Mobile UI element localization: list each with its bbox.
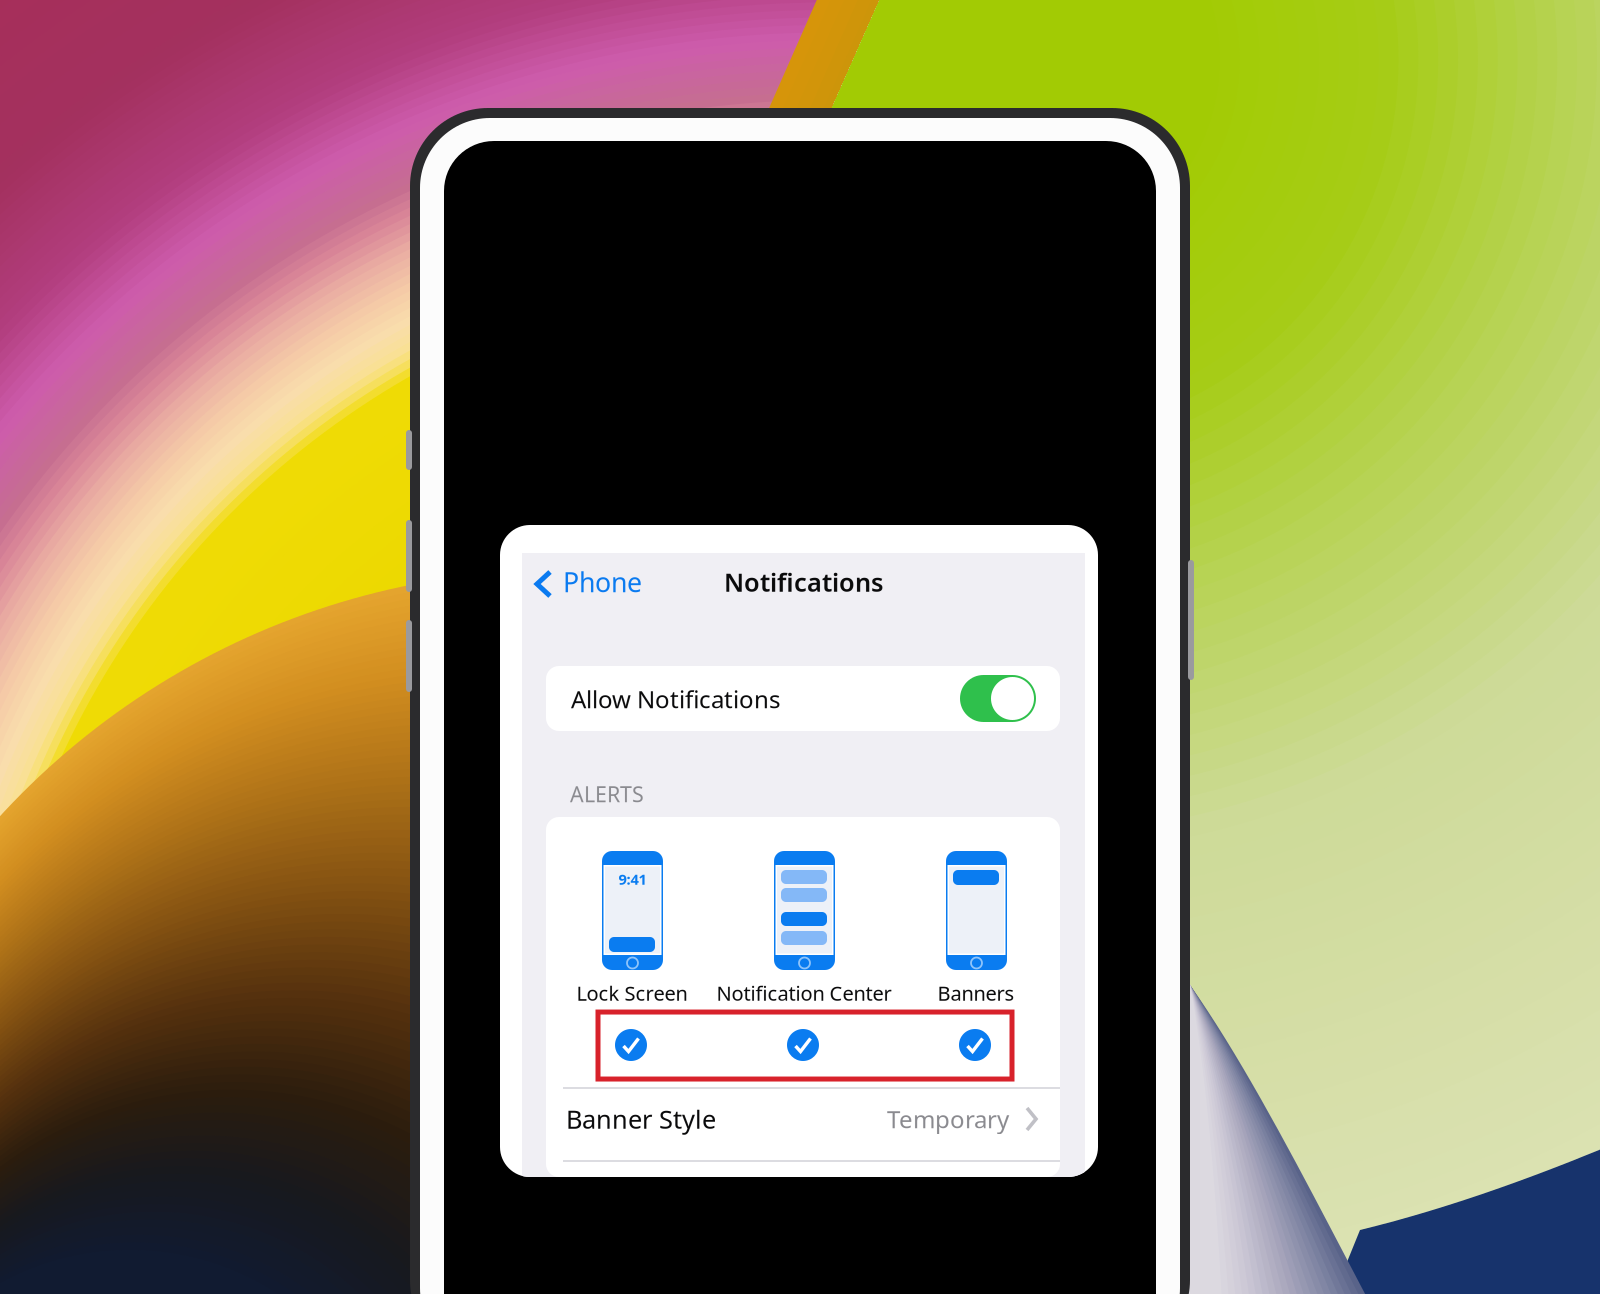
staticText: Temporary [887,1103,1009,1135]
staticText: Notification Center [716,980,891,1006]
button[interactable]: Allow Notifications [960,675,1036,722]
staticText: Phone [563,564,642,600]
button[interactable]: 9:41 [546,817,1060,1017]
staticText: ALERTS [570,780,644,808]
button[interactable]: Allow Notifications [546,666,1060,731]
button[interactable]: Banners [546,817,1060,1017]
staticText: Notifications [724,565,883,599]
button[interactable] [546,1089,1060,1159]
staticText: Banner Style [566,1102,716,1136]
staticText: Allow Notifications [571,683,780,715]
button[interactable]: Notification Center [546,817,1060,1017]
staticText: Lock Screen [576,980,687,1006]
staticText: Banners [937,980,1014,1006]
staticText: 9:41 [618,869,646,889]
button[interactable]: Back to Phone [533,570,557,598]
